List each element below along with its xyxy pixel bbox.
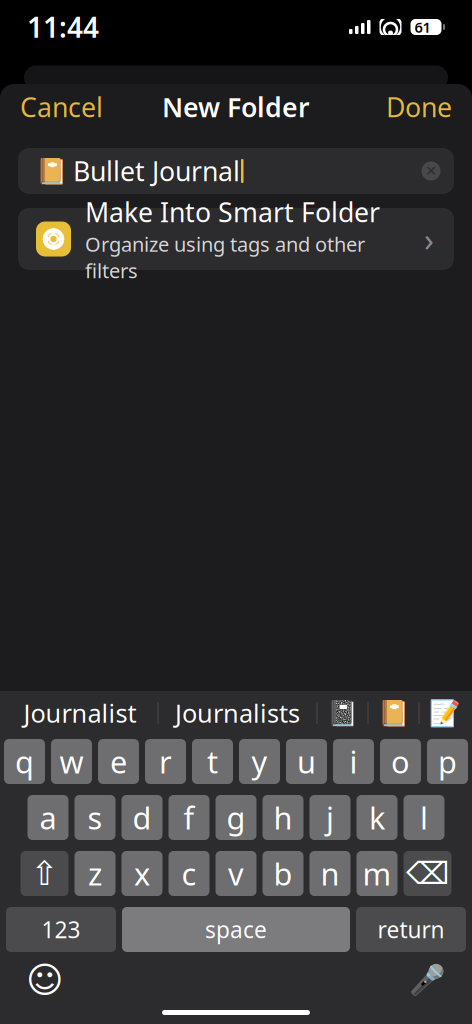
staticText: c — [181, 853, 196, 894]
staticText: ⇧ — [30, 855, 58, 892]
staticText: j — [326, 797, 334, 838]
button[interactable]: i — [333, 739, 374, 784]
button[interactable]: Done — [366, 84, 472, 130]
staticText: m — [362, 853, 391, 894]
button[interactable]: p — [427, 739, 468, 784]
button[interactable]: Clear text — [414, 154, 448, 188]
button[interactable]: Notebook emoji — [317, 693, 367, 733]
staticText: 📔 — [377, 698, 409, 727]
staticText: x — [134, 853, 150, 894]
staticText: v — [228, 853, 244, 894]
staticText: r — [159, 741, 172, 782]
staticText: p — [438, 741, 457, 782]
staticText: y — [251, 741, 267, 782]
button[interactable]: return — [356, 907, 466, 952]
staticText: Bullet Journal — [73, 153, 240, 189]
button[interactable]: g — [215, 795, 256, 840]
button[interactable]: Make Into Smart Folder — [18, 208, 454, 270]
button[interactable]: b — [262, 851, 303, 896]
staticText: 123 — [41, 914, 80, 944]
staticText: h — [273, 797, 292, 838]
staticText: Done — [386, 89, 452, 125]
button[interactable]: z — [74, 851, 115, 896]
staticText: s — [87, 797, 102, 838]
staticText: a — [39, 797, 56, 838]
staticText: f — [183, 797, 194, 838]
staticText: e — [110, 741, 127, 782]
button[interactable]: d — [121, 795, 162, 840]
staticText: 11:44 — [27, 8, 99, 46]
staticText: 📔 — [36, 156, 68, 185]
staticText: 📝 — [428, 698, 460, 727]
button[interactable]: Dictation — [400, 958, 454, 1002]
button[interactable]: Journalists — [158, 693, 316, 733]
button[interactable]: v — [215, 851, 256, 896]
button[interactable]: q — [4, 739, 45, 784]
button[interactable]: w — [51, 739, 92, 784]
staticText: Make Into Smart Folder — [85, 194, 380, 230]
staticText: ✕ — [425, 163, 437, 179]
staticText: k — [369, 797, 385, 838]
button[interactable]: k — [356, 795, 397, 840]
button[interactable]: a — [27, 795, 68, 840]
staticText: New Folder — [162, 89, 310, 125]
button[interactable]: l — [403, 795, 444, 840]
staticText: z — [88, 853, 102, 894]
staticText: b — [273, 853, 292, 894]
staticText: u — [297, 741, 316, 782]
staticText: Journalists — [175, 696, 300, 730]
staticText: w — [59, 741, 83, 782]
button[interactable]: Journalist — [2, 693, 157, 733]
staticText: i — [349, 741, 357, 782]
button[interactable]: Emoji keyboard — [18, 958, 72, 1002]
button[interactable]: e — [98, 739, 139, 784]
button[interactable]: t — [192, 739, 233, 784]
staticText: Journalist — [23, 696, 136, 730]
button[interactable]: f — [168, 795, 209, 840]
button[interactable]: space — [122, 907, 350, 952]
staticText: g — [226, 797, 245, 838]
button[interactable]: Delete — [403, 851, 451, 896]
staticText: 61 — [414, 17, 430, 37]
staticText: ☺ — [26, 960, 64, 1000]
staticText: l — [420, 797, 428, 838]
button[interactable]: y — [239, 739, 280, 784]
button[interactable]: Decorated notebook emoji — [368, 693, 418, 733]
button[interactable]: m — [356, 851, 397, 896]
button[interactable]: s — [74, 795, 115, 840]
button[interactable]: Shift — [20, 851, 68, 896]
staticText: t — [207, 741, 218, 782]
staticText: n — [320, 853, 339, 894]
button[interactable]: o — [380, 739, 421, 784]
button[interactable]: n — [309, 851, 350, 896]
staticText: › — [424, 218, 434, 260]
staticText: Organize using tags and other filters — [85, 231, 365, 284]
button[interactable]: j — [309, 795, 350, 840]
button[interactable]: h — [262, 795, 303, 840]
staticText: return — [377, 914, 444, 944]
staticText: d — [132, 797, 151, 838]
staticText: ⌫ — [406, 856, 449, 891]
staticText: 🎤 — [408, 963, 445, 997]
button[interactable]: Memo emoji — [419, 693, 469, 733]
staticText: 📓 — [326, 698, 358, 727]
button[interactable]: r — [145, 739, 186, 784]
button[interactable]: u — [286, 739, 327, 784]
staticText: q — [15, 741, 34, 782]
button[interactable]: x — [121, 851, 162, 896]
button[interactable]: c — [168, 851, 209, 896]
button[interactable]: 123 — [6, 907, 116, 952]
staticText: Cancel — [20, 89, 103, 125]
staticText: o — [391, 741, 410, 782]
staticText: space — [205, 914, 267, 944]
button[interactable]: Cancel — [0, 84, 123, 130]
